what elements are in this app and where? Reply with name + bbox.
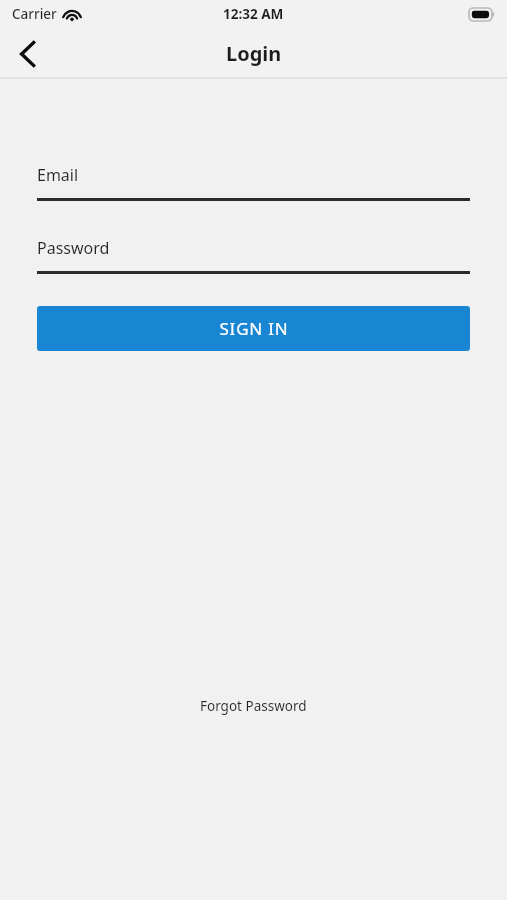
button[interactable]: Back — [6, 32, 50, 76]
staticText: 12:32 AM — [223, 5, 284, 23]
staticText: Carrier — [12, 5, 57, 23]
staticText: Email — [37, 164, 79, 186]
staticText: Login — [226, 40, 282, 67]
button[interactable]: SIGN IN — [37, 306, 470, 351]
button[interactable]: Email — [37, 164, 470, 201]
staticText: SIGN IN — [219, 317, 289, 340]
button[interactable]: Password — [37, 237, 470, 274]
staticText: Password — [37, 237, 110, 259]
staticText: Forgot Password — [200, 697, 307, 715]
button[interactable]: Forgot Password — [192, 694, 315, 718]
